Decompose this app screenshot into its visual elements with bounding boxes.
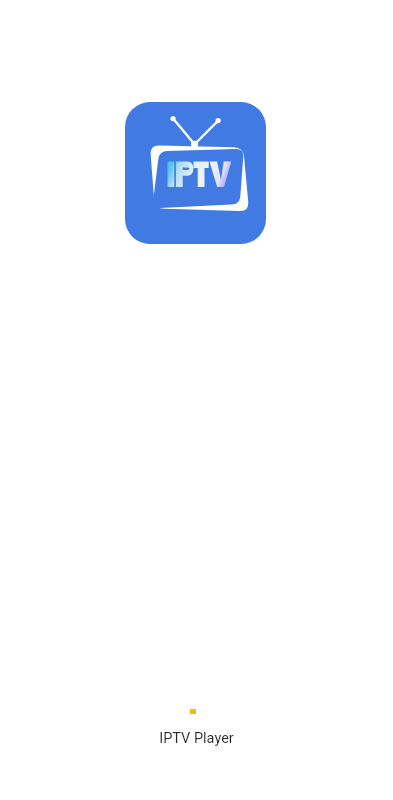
staticText: IPTV Player bbox=[159, 730, 234, 747]
